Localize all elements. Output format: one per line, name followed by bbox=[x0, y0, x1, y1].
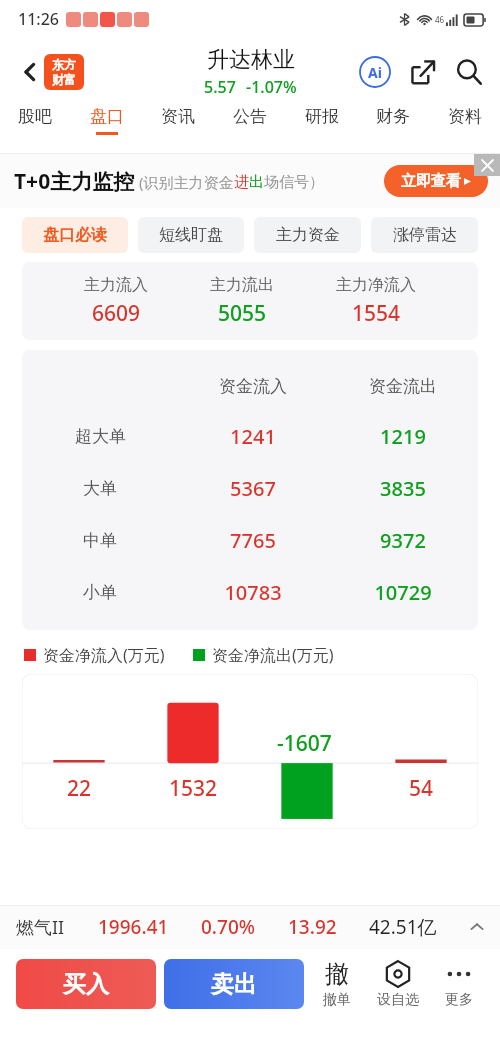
staticText: 10783 bbox=[178, 579, 328, 606]
button[interactable]: 盘口 bbox=[88, 106, 126, 135]
button[interactable]: 短线盯盘 bbox=[138, 217, 244, 253]
staticText: 中单 bbox=[83, 530, 117, 551]
staticText: 出 bbox=[249, 173, 264, 192]
staticText: 1219 bbox=[328, 423, 478, 450]
staticText: 卖出 bbox=[211, 970, 257, 999]
button[interactable]: Close bbox=[474, 154, 500, 176]
staticText: 9372 bbox=[328, 527, 478, 554]
staticText: -1.07% bbox=[246, 76, 297, 98]
staticText: 1996.41 bbox=[98, 914, 169, 940]
staticText: 3835 bbox=[328, 475, 478, 502]
staticText: 11:26 bbox=[18, 8, 59, 30]
staticText: 涨停雷达 bbox=[393, 225, 457, 245]
button[interactable]: 买入 bbox=[16, 959, 156, 1009]
button[interactable]: 资料 bbox=[446, 106, 484, 135]
staticText: 升达林业 bbox=[207, 46, 295, 74]
button[interactable]: 更多 bbox=[430, 959, 488, 1009]
staticText: 资金净流入(万元) bbox=[43, 644, 165, 666]
staticText: Ai bbox=[368, 63, 382, 82]
staticText: 股吧 bbox=[18, 106, 52, 127]
staticText: 更多 bbox=[445, 991, 473, 1009]
staticText: 5055 bbox=[218, 299, 267, 328]
staticText: 公告 bbox=[233, 106, 267, 127]
staticText: 撤单 bbox=[323, 991, 351, 1009]
staticText: 资金流入 bbox=[178, 376, 328, 397]
button[interactable]: Share bbox=[402, 51, 444, 93]
button[interactable]: East Money logo bbox=[44, 54, 84, 90]
staticText: 6609 bbox=[92, 299, 141, 328]
staticText: 设自选 bbox=[377, 991, 419, 1009]
staticText: -1607 bbox=[277, 729, 332, 758]
staticText: 主力流入 bbox=[84, 275, 148, 295]
button[interactable]: 立即查看 bbox=[384, 165, 488, 197]
button[interactable]: 资讯 bbox=[159, 106, 197, 135]
button[interactable]: 财务 bbox=[374, 106, 412, 135]
staticText: 财富 bbox=[52, 72, 76, 87]
staticText: 22 bbox=[67, 774, 92, 803]
staticText: 资讯 bbox=[161, 106, 195, 127]
button[interactable]: 股吧 bbox=[16, 106, 54, 135]
button[interactable]: AI assistant bbox=[354, 51, 396, 93]
staticText: 1241 bbox=[178, 423, 328, 450]
staticText: 主力净流入 bbox=[336, 275, 416, 295]
staticText: 资金流出 bbox=[328, 376, 478, 397]
staticText: 54 bbox=[409, 774, 434, 803]
staticText: 小单 bbox=[83, 582, 117, 603]
staticText: 10729 bbox=[328, 579, 478, 606]
staticText: 46 bbox=[435, 14, 445, 25]
staticText: 财务 bbox=[376, 106, 410, 127]
button[interactable]: 涨停雷达 bbox=[371, 217, 478, 253]
staticText: (识别主力资金 bbox=[139, 172, 234, 192]
staticText: 盘口必读 bbox=[43, 225, 107, 245]
button[interactable]: 设自选 bbox=[366, 959, 430, 1009]
staticText: 1532 bbox=[169, 774, 218, 803]
button[interactable]: Back bbox=[8, 50, 52, 94]
button[interactable]: 盘口必读 bbox=[22, 217, 128, 253]
staticText: 买入 bbox=[63, 970, 109, 999]
staticText: 5.57 bbox=[204, 76, 236, 98]
staticText: 1554 bbox=[352, 299, 401, 328]
staticText: 研报 bbox=[305, 106, 339, 127]
staticText: 5367 bbox=[178, 475, 328, 502]
staticText: 13.92 bbox=[288, 914, 337, 940]
staticText: T+0主力监控 bbox=[14, 167, 135, 196]
staticText: 撤 bbox=[325, 959, 349, 989]
staticText: 7765 bbox=[178, 527, 328, 554]
staticText: 资金净流出(万元) bbox=[212, 644, 334, 666]
staticText: 进 bbox=[234, 173, 249, 192]
staticText: 大单 bbox=[83, 478, 117, 499]
staticText: 42.51亿 bbox=[369, 914, 437, 940]
button[interactable]: 卖出 bbox=[164, 959, 304, 1009]
staticText: 盘口 bbox=[90, 106, 124, 127]
button[interactable]: 研报 bbox=[303, 106, 341, 135]
button[interactable]: 主力资金 bbox=[254, 217, 361, 253]
button[interactable]: 撤 bbox=[308, 959, 366, 1009]
staticText: 燃气II bbox=[16, 915, 65, 940]
staticText: 立即查看 bbox=[401, 172, 461, 191]
staticText: 主力流出 bbox=[210, 275, 274, 295]
button[interactable]: 公告 bbox=[231, 106, 269, 135]
staticText: 超大单 bbox=[75, 426, 126, 447]
staticText: 主力资金 bbox=[276, 225, 340, 245]
staticText: 资料 bbox=[448, 106, 482, 127]
staticText: 场信号） bbox=[264, 173, 324, 192]
staticText: 东方 bbox=[52, 57, 76, 72]
button[interactable]: 燃气II bbox=[0, 905, 500, 949]
staticText: 短线盯盘 bbox=[159, 225, 223, 245]
button[interactable]: Search bbox=[448, 51, 490, 93]
staticText: 0.70% bbox=[201, 914, 255, 940]
button[interactable]: T+0主力监控 bbox=[0, 154, 500, 208]
